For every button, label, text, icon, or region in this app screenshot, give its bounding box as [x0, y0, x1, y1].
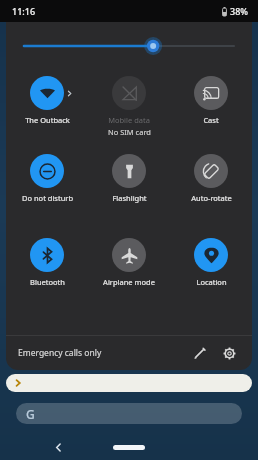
staticText: Mobile data: [108, 115, 150, 125]
staticText: 11:16: [12, 5, 36, 17]
button[interactable]: Bluetooth: [6, 232, 88, 316]
button[interactable]: Mobile data: [88, 70, 170, 148]
button[interactable]: [6, 22, 252, 70]
button[interactable]: Home: [113, 445, 145, 450]
button[interactable]: Airplane mode: [88, 232, 170, 316]
staticText: No SIM card: [108, 127, 151, 137]
button[interactable]: Auto-rotate: [170, 148, 252, 232]
staticText: G: [26, 406, 35, 422]
staticText: Auto-rotate: [191, 193, 232, 203]
button[interactable]: Back: [48, 437, 68, 457]
staticText: Cast: [203, 115, 219, 125]
button[interactable]: The Outback: [6, 70, 88, 148]
staticText: The Outback: [25, 115, 70, 125]
staticText: Bluetooth: [30, 277, 65, 287]
button[interactable]: Search: [16, 403, 242, 424]
button[interactable]: Location: [170, 232, 252, 316]
button[interactable]: Do not disturb: [6, 148, 88, 232]
staticText: Do not disturb: [22, 193, 73, 203]
staticText: Emergency calls only: [18, 347, 102, 359]
staticText: Flashlight: [112, 193, 147, 203]
button[interactable]: Edit tiles: [186, 340, 212, 366]
button[interactable]: Cast: [170, 70, 252, 148]
button[interactable]: [6, 374, 252, 392]
button[interactable]: Flashlight: [88, 148, 170, 232]
staticText: 38%: [230, 5, 248, 17]
button[interactable]: Settings: [216, 340, 242, 366]
staticText: Airplane mode: [103, 277, 155, 287]
staticText: Location: [196, 277, 227, 287]
